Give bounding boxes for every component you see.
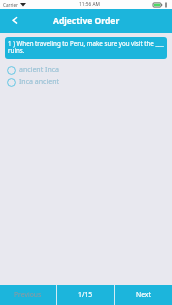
staticText: 1 ) When traveling to Peru, make sure yo… [8,39,164,55]
staticText: Adjective Order [53,15,120,27]
button[interactable]: 1/15 [57,285,114,305]
button[interactable]: 1 ) When traveling to Peru, make sure yo… [5,37,167,59]
button[interactable]: Back [0,9,28,33]
staticText: 11:56 AM [79,1,100,8]
button[interactable]: ancient Inca [0,64,172,76]
button[interactable]: Previous [0,285,56,305]
staticText: Previous [14,290,42,299]
button[interactable]: Inca ancient [0,76,172,88]
staticText: Carrier [3,2,18,8]
staticText: Next [136,290,151,299]
button[interactable]: Next [115,285,172,305]
staticText: ancient Inca [19,65,60,75]
staticText: Inca ancient [19,77,60,87]
staticText: 1/15 [78,290,93,299]
